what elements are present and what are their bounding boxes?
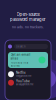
button[interactable]: Netflix [8,71,48,77]
staticText: no ads. no trackers. [12,25,44,29]
staticText: YouTube [16,79,30,83]
staticText: password manager [10,17,46,22]
staticText: alias@proton.me [16,83,33,86]
staticText: me@proton.me [16,74,31,77]
staticText: Search [16,45,26,48]
button[interactable]: Get an email alias [8,52,48,68]
staticText: Netflix [16,71,26,74]
button[interactable]: Search [14,44,48,49]
staticText: Open-source [16,12,39,17]
staticText: Hide your real address [10,61,28,67]
staticText: Get an email alias [10,53,30,60]
button[interactable]: YouTube [8,79,48,86]
